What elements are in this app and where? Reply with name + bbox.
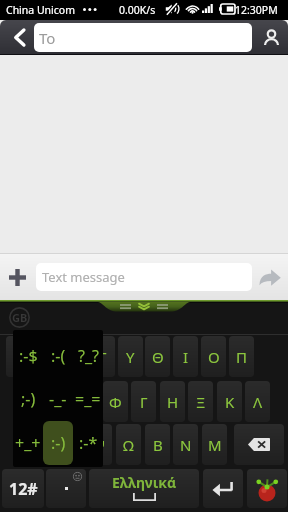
button[interactable]: Π — [229, 336, 254, 377]
staticText: ;-) — [21, 388, 36, 410]
staticText: Δ — [83, 392, 93, 412]
button[interactable]: :-( — [43, 344, 73, 368]
button[interactable]: Ω — [116, 424, 141, 465]
staticText: Α — [26, 392, 36, 412]
button[interactable]: Φ — [103, 381, 128, 422]
button[interactable]: Δ — [75, 381, 100, 422]
button[interactable]: Ξ — [188, 381, 213, 422]
staticText: China Unicom — [6, 3, 76, 17]
button[interactable] — [46, 469, 86, 508]
staticText: Φ — [109, 392, 122, 412]
button[interactable]: Text message — [36, 263, 252, 291]
staticText: Σ — [14, 347, 23, 367]
button[interactable]: Σ — [6, 336, 31, 377]
button[interactable]: :-$ — [13, 344, 43, 368]
button[interactable]: +_+ — [13, 431, 43, 455]
button[interactable]: Υ — [118, 336, 143, 377]
staticText: Ο — [208, 347, 220, 367]
button[interactable]: ;-) — [13, 387, 43, 411]
staticText: To — [39, 28, 56, 48]
staticText: Ψ — [93, 435, 106, 455]
staticText: -_- — [49, 388, 67, 410]
staticText: :-* — [79, 432, 98, 454]
staticText: :-) — [51, 432, 66, 454]
button[interactable]: Σ — [46, 381, 71, 422]
button[interactable]: Χ — [59, 424, 84, 465]
staticText: Κ — [225, 392, 235, 412]
staticText: Text message — [42, 268, 125, 286]
button[interactable]: Ν — [173, 424, 198, 465]
staticText: :-$ — [19, 345, 38, 367]
staticText: 0.00K/s — [119, 3, 156, 17]
button[interactable]: Ζ — [30, 424, 55, 465]
button[interactable]: :-) — [43, 431, 73, 455]
button[interactable]: Ι — [173, 336, 198, 377]
button[interactable]: Ε — [34, 336, 59, 377]
staticText: Μ — [208, 435, 222, 455]
staticText: Ξ — [196, 392, 206, 412]
staticText: ?_? — [78, 345, 99, 367]
staticText: Β — [153, 435, 163, 455]
button[interactable]: :-* — [73, 431, 103, 455]
button[interactable]: Ο — [201, 336, 226, 377]
staticText: +_+ — [15, 432, 41, 454]
staticText: Θ — [152, 347, 164, 367]
button[interactable]: Θ — [145, 336, 170, 377]
button[interactable]: To — [34, 23, 252, 52]
button[interactable]: Choose contact — [254, 20, 288, 55]
staticText: Ι — [183, 347, 189, 367]
staticText: Υ — [126, 347, 135, 367]
button[interactable]: 12# — [2, 469, 44, 508]
button[interactable]: Add attachment — [0, 254, 34, 300]
staticText: Σ — [54, 392, 63, 412]
button[interactable]: Ελληνικά — [89, 469, 199, 508]
button[interactable]: -_- — [43, 387, 73, 411]
button[interactable]: ?_? — [73, 344, 103, 368]
button[interactable]: Ψ — [87, 424, 112, 465]
button[interactable]: Back — [6, 20, 32, 55]
staticText: :-( — [51, 345, 66, 367]
staticText: GB — [12, 310, 28, 325]
button[interactable]: Λ — [245, 381, 270, 422]
button[interactable]: Ρ — [62, 336, 87, 377]
button[interactable]: Γ — [131, 381, 156, 422]
staticText: Ελληνικά — [112, 473, 177, 492]
staticText: Ω — [123, 435, 134, 455]
staticText: Λ — [253, 392, 263, 412]
staticText: Π — [236, 347, 247, 367]
button[interactable]: Μ — [202, 424, 227, 465]
staticText: =_= — [75, 388, 101, 410]
button[interactable]: Κ — [217, 381, 242, 422]
staticText: Η — [167, 392, 179, 412]
button[interactable]: Β — [145, 424, 170, 465]
button[interactable]: Η — [160, 381, 185, 422]
button[interactable]: Τ — [90, 336, 115, 377]
button[interactable]: GO Keyboard — [247, 469, 287, 508]
button[interactable]: Α — [18, 381, 43, 422]
staticText: Γ — [140, 392, 148, 412]
button[interactable]: Backspace — [234, 424, 284, 465]
staticText: Τ — [98, 347, 107, 367]
button[interactable]: =_= — [73, 387, 103, 411]
staticText: Χ — [67, 435, 76, 455]
staticText: 12:30PM — [235, 3, 278, 17]
button[interactable]: Enter — [203, 469, 243, 508]
button[interactable]: Send — [252, 254, 288, 300]
staticText: 12# — [9, 478, 38, 500]
staticText: Ζ — [38, 435, 47, 455]
staticText: Ρ — [70, 347, 80, 367]
staticText: Ν — [180, 435, 192, 455]
